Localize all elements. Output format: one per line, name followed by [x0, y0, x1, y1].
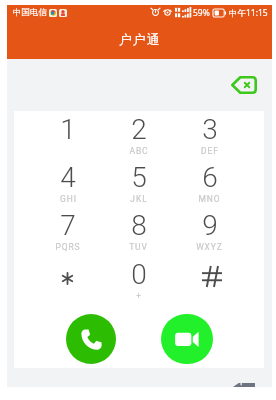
button[interactable]: Voice call — [66, 314, 116, 364]
button[interactable]: 7 — [33, 212, 103, 261]
staticText: ABC — [129, 146, 149, 156]
staticText: 59% — [193, 7, 210, 19]
staticText: JKL — [130, 194, 148, 204]
staticText: TUV — [129, 242, 148, 252]
staticText: WXYZ — [196, 242, 223, 252]
button[interactable]: 8 — [103, 212, 174, 261]
button[interactable]: 9 — [174, 212, 245, 261]
staticText: 2 — [131, 113, 147, 146]
button[interactable]: 2 — [103, 116, 174, 164]
staticText: DEF — [201, 146, 219, 156]
staticText: 4 — [60, 161, 76, 194]
button[interactable]: 3 — [174, 116, 245, 164]
staticText: 户户通 — [119, 31, 161, 47]
button[interactable]: Video call — [161, 314, 213, 364]
staticText: + — [136, 291, 142, 301]
button[interactable]: 4 — [33, 164, 103, 212]
staticText: 5 — [131, 161, 147, 194]
staticText: 1 — [60, 113, 76, 146]
staticText: 3 — [202, 113, 218, 146]
staticText: 中国电信 — [13, 7, 47, 18]
staticText: 6 — [202, 161, 218, 194]
staticText: MNO — [198, 194, 221, 204]
button[interactable]: 1 — [33, 116, 103, 164]
staticText: 0 — [131, 258, 147, 291]
button[interactable]: 5 — [103, 164, 174, 212]
staticText: 8 — [131, 209, 147, 242]
staticText: GHI — [60, 194, 77, 204]
staticText: 9 — [202, 209, 218, 242]
staticText: 中午11:15 — [229, 7, 268, 19]
button[interactable]: 0 — [103, 261, 174, 310]
button[interactable] — [33, 261, 103, 310]
button[interactable]: 6 — [174, 164, 245, 212]
button[interactable]: Backspace — [223, 70, 263, 100]
staticText: PQRS — [55, 242, 81, 252]
button[interactable] — [174, 261, 245, 310]
staticText: 7 — [60, 209, 76, 242]
